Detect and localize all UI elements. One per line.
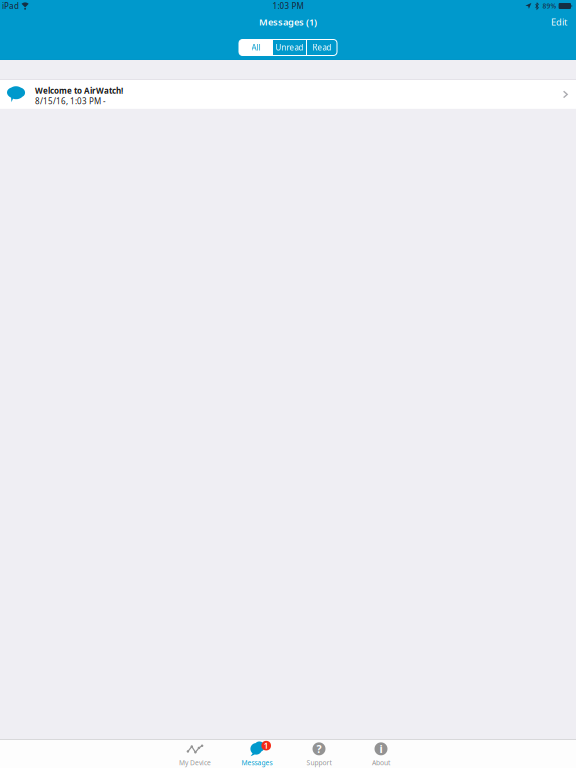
staticText: 1: [264, 740, 269, 751]
staticText: 8/15/16, 1:03 PM -: [35, 96, 106, 106]
staticText: Welcome to AirWatch!: [35, 85, 123, 96]
staticText: iPad: [2, 1, 19, 11]
staticText: Unread: [275, 42, 303, 53]
staticText: i: [379, 742, 382, 756]
button[interactable]: Read: [307, 39, 337, 55]
staticText: 89%: [543, 2, 557, 10]
button[interactable]: Welcome to AirWatch!: [0, 79, 576, 109]
button[interactable]: 1: [226, 739, 288, 768]
staticText: Edit: [551, 16, 567, 28]
staticText: My Device: [179, 758, 211, 767]
button[interactable]: ?: [288, 739, 350, 768]
staticText: ?: [316, 742, 321, 756]
button[interactable]: All: [239, 39, 273, 55]
staticText: Messages: [241, 758, 272, 767]
staticText: Support: [306, 758, 331, 767]
button[interactable]: Unread: [273, 39, 306, 55]
staticText: Messages (1): [259, 16, 317, 28]
staticText: About: [372, 758, 390, 767]
button[interactable]: My Device: [164, 739, 226, 768]
button[interactable]: Edit: [542, 11, 576, 33]
staticText: 1:03 PM: [272, 1, 303, 11]
staticText: Read: [312, 42, 331, 53]
staticText: All: [251, 42, 260, 53]
button[interactable]: i: [350, 739, 412, 768]
